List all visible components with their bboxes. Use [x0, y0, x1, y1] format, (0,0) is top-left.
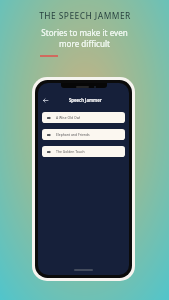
staticText: Elephant and Friends [56, 132, 90, 137]
staticText: Stories to make it even more difficult [41, 27, 128, 49]
button[interactable]: Back [38, 91, 129, 109]
staticText: A Wise Old Owl [56, 115, 81, 120]
button[interactable]: A Wise Old Owl [42, 112, 125, 123]
staticText: The Golden Touch [56, 149, 85, 154]
button[interactable]: The Golden Touch [42, 146, 125, 157]
button[interactable]: Back [41, 96, 50, 105]
staticText: THE SPEECH JAMMER [39, 10, 131, 21]
staticText: Speech Jammer [69, 97, 102, 103]
button[interactable]: Elephant and Friends [42, 129, 125, 140]
